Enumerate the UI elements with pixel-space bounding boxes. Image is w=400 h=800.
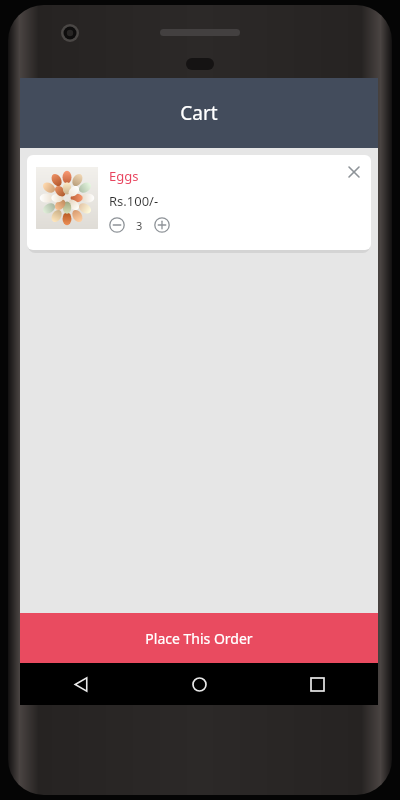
button[interactable]: Eggs [27,155,371,250]
button[interactable]: Place This Order [20,613,378,663]
button[interactable]: Increase quantity [154,217,170,233]
staticText: Cart [180,100,218,126]
staticText: Place This Order [145,629,253,648]
button[interactable]: Remove item [343,161,365,183]
button[interactable]: Back [64,667,98,701]
staticText: Rs.100/- [109,192,159,210]
button[interactable]: Home [182,667,216,701]
staticText: 3 [136,218,143,233]
button[interactable]: Decrease quantity [109,217,125,233]
button[interactable]: Recent apps [300,667,334,701]
staticText: Eggs [109,167,139,185]
